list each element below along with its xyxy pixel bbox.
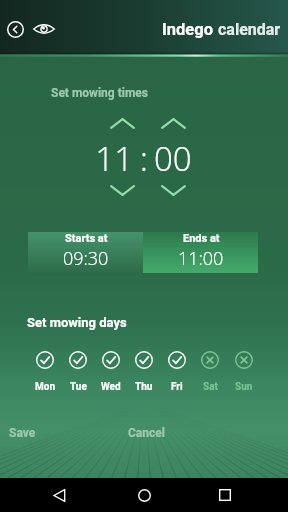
staticText: :	[132, 136, 156, 181]
button[interactable]: Increase	[109, 114, 135, 132]
button[interactable]: Wed	[95, 351, 127, 393]
button[interactable]: Starts at	[28, 232, 143, 273]
staticText: Mon	[35, 381, 56, 393]
staticText: Indego	[162, 20, 214, 39]
staticText: Thu	[135, 381, 153, 393]
button[interactable]: Sat	[194, 351, 226, 393]
button[interactable]: Recent apps	[208, 478, 242, 512]
button[interactable]: Sun	[228, 351, 260, 393]
button[interactable]: Home	[127, 478, 161, 512]
staticText: Set mowing times	[51, 86, 148, 100]
button[interactable]: Preview	[29, 14, 59, 44]
button[interactable]: Decrease	[109, 181, 135, 199]
button[interactable]: Tue	[62, 351, 94, 393]
staticText: Fri	[171, 381, 183, 393]
staticText: Save	[9, 426, 36, 440]
button[interactable]: Fri	[161, 351, 193, 393]
staticText: 11	[84, 136, 133, 181]
button[interactable]: Save	[3, 422, 42, 444]
button[interactable]: Indego	[162, 20, 281, 39]
staticText: Ends at	[183, 232, 220, 245]
staticText: Sun	[235, 381, 253, 393]
button[interactable]: Ends at	[143, 232, 258, 273]
staticText: Wed	[101, 381, 121, 393]
staticText: 09:30	[63, 246, 109, 271]
staticText: 11:00	[178, 246, 224, 271]
button[interactable]: Thu	[128, 351, 160, 393]
button[interactable]: Mon	[29, 351, 61, 393]
button[interactable]: Back	[0, 14, 30, 44]
staticText: Tue	[70, 381, 87, 393]
staticText: Starts at	[65, 232, 108, 245]
staticText: calendar	[214, 20, 281, 39]
staticText: 00	[154, 136, 202, 181]
staticText: Sat	[203, 381, 218, 393]
button[interactable]: Cancel	[122, 422, 171, 444]
button[interactable]: Back	[42, 478, 76, 512]
staticText: Cancel	[128, 426, 165, 440]
staticText: Set mowing days	[27, 315, 127, 330]
button[interactable]: Decrease	[160, 181, 186, 199]
button[interactable]: Increase	[160, 114, 186, 132]
